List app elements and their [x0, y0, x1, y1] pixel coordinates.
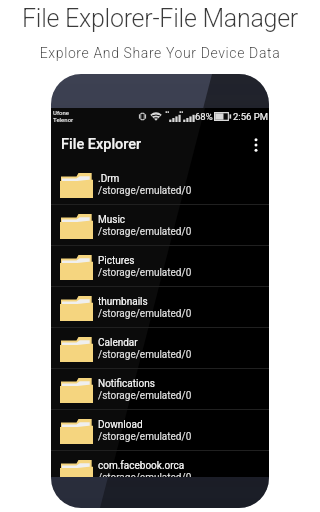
button[interactable]: thumbnails	[51, 287, 269, 328]
staticText: thumbnails	[98, 296, 148, 308]
staticText: /storage/emulated/0	[98, 431, 192, 443]
staticText: /storage/emulated/0	[98, 349, 192, 361]
button[interactable]: Music	[51, 205, 269, 246]
staticText: Music	[98, 214, 126, 226]
staticText: Download	[98, 419, 143, 431]
button[interactable]: com.facebook.orca	[51, 451, 269, 477]
staticText: /storage/emulated/0	[98, 390, 192, 402]
button[interactable]: .Drm	[51, 164, 269, 205]
staticText: /storage/emulated/0	[98, 185, 192, 197]
staticText: Calendar	[98, 337, 138, 349]
staticText: /storage/emulated/0	[98, 308, 192, 320]
staticText: 2:56 PM	[233, 111, 268, 122]
staticText: Notifications	[98, 378, 155, 390]
staticText: /storage/emulated/0	[98, 226, 192, 238]
staticText: Ufone	[53, 109, 70, 116]
staticText: /storage/emulated/0	[98, 267, 192, 279]
staticText: Telenor	[53, 116, 74, 123]
button[interactable]: More options	[243, 125, 269, 164]
staticText: /storage/emulated/0	[98, 472, 192, 477]
button[interactable]: Notifications	[51, 369, 269, 410]
button[interactable]: Pictures	[51, 246, 269, 287]
staticText: File Explorer	[61, 136, 142, 153]
staticText: com.facebook.orca	[98, 460, 185, 472]
staticText: 68%	[195, 111, 213, 122]
button[interactable]: Download	[51, 410, 269, 451]
staticText: File Explorer-File Manager	[0, 4, 320, 33]
staticText: Explore And Share Your Device Data	[0, 45, 320, 61]
staticText: Pictures	[98, 255, 135, 267]
staticText: .Drm	[98, 173, 120, 185]
button[interactable]: Calendar	[51, 328, 269, 369]
